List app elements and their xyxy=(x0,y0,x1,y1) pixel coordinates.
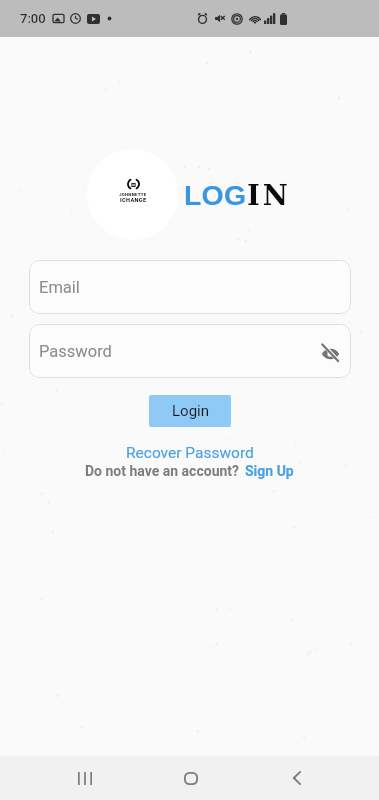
staticText: IN xyxy=(247,179,292,211)
button[interactable]: Sign Up xyxy=(245,463,294,479)
staticText: LOG xyxy=(184,179,247,211)
button[interactable]: Back xyxy=(244,756,350,800)
button[interactable]: Show password xyxy=(317,340,343,366)
staticText: Do not have an account? xyxy=(85,463,240,479)
button[interactable]: Login xyxy=(149,395,231,427)
staticText: Sign Up xyxy=(245,463,294,479)
button[interactable]: Recover Password xyxy=(126,444,254,462)
staticText: Login xyxy=(172,402,209,420)
button[interactable]: Email xyxy=(29,260,351,314)
staticText: Recover Password xyxy=(126,444,254,462)
staticText: Password xyxy=(39,342,112,361)
button[interactable]: Home xyxy=(138,756,244,800)
staticText: JOHNNETTE xyxy=(119,192,147,197)
staticText: ICHANGE xyxy=(120,197,147,204)
button[interactable]: Recents xyxy=(32,756,138,800)
staticText: Email xyxy=(39,278,80,297)
staticText: 7:00 xyxy=(20,11,46,26)
button[interactable]: Password xyxy=(29,324,351,378)
